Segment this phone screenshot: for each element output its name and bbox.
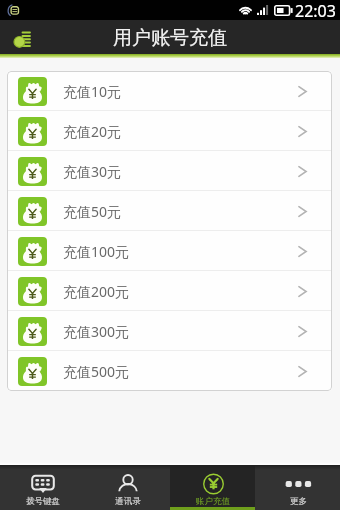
staticText: 充值300元 xyxy=(63,322,130,341)
button[interactable]: 充值300元 xyxy=(7,311,332,351)
button[interactable]: Contacts xyxy=(85,465,170,510)
other: Contacts xyxy=(118,475,138,493)
staticText: 22:03 xyxy=(295,0,336,20)
staticText: 账户充值 xyxy=(196,496,230,507)
staticText: 充值200元 xyxy=(63,282,130,301)
staticText: 充值50元 xyxy=(63,202,122,221)
button[interactable]: 充值500元 xyxy=(7,351,332,391)
other: Dial pad xyxy=(31,475,55,493)
button[interactable]: 充值10元 xyxy=(7,71,332,111)
button[interactable]: 充值20元 xyxy=(7,111,332,151)
button[interactable]: 充值30元 xyxy=(7,151,332,191)
button[interactable]: 充值50元 xyxy=(7,191,332,231)
staticText: 用户账号充值 xyxy=(113,26,227,50)
staticText: 更多 xyxy=(290,496,307,507)
button[interactable]: Dial pad xyxy=(0,465,85,510)
button[interactable]: More xyxy=(255,465,340,510)
staticText: 拨号键盘 xyxy=(26,496,60,507)
staticText: 充值30元 xyxy=(63,162,122,181)
staticText: 充值10元 xyxy=(63,82,122,101)
other: Account recharge xyxy=(203,474,224,494)
other: More xyxy=(285,475,311,493)
staticText: 充值500元 xyxy=(63,362,130,381)
staticText: 通讯录 xyxy=(115,496,141,507)
staticText: 充值20元 xyxy=(63,122,122,141)
button[interactable]: Account recharge xyxy=(170,465,255,510)
button[interactable]: 充值200元 xyxy=(7,271,332,311)
button[interactable]: 充值100元 xyxy=(7,231,332,271)
staticText: 充值100元 xyxy=(63,242,130,261)
